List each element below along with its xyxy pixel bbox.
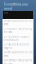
staticText: ut labore et dolore magna [3, 43, 28, 50]
staticText: do eiusmod tempor incididunt [3, 35, 29, 42]
staticText: Everything you need [4, 2, 28, 11]
staticText: Lorem ipsum dolor sit amet [3, 19, 32, 26]
staticText: consectetur adipiscing elit sed [3, 58, 32, 64]
staticText: Lorem ipsum dolor sit amet [3, 51, 32, 57]
staticText: 9:41 [4, 11, 8, 14]
staticText: in one simple place. [4, 11, 35, 14]
staticText: consectetur adipiscing elit sed [3, 27, 32, 34]
